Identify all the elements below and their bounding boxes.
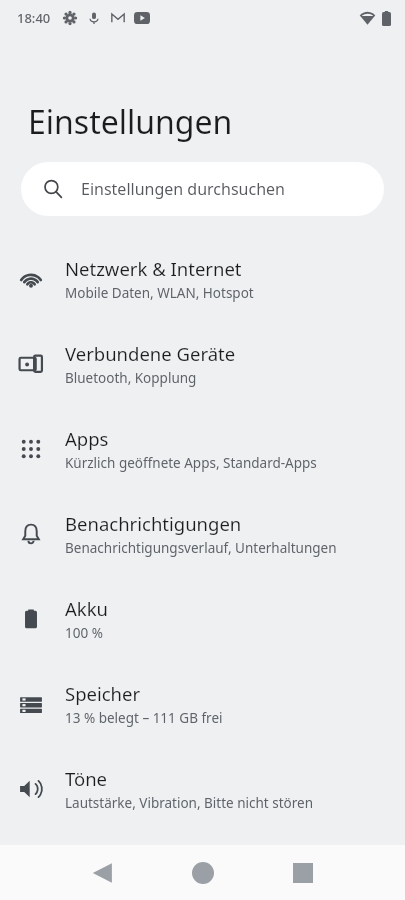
staticText: Benachrichtigungen xyxy=(65,511,242,536)
button[interactable]: Einstellungen durchsuchen xyxy=(21,162,384,216)
button[interactable]: Akku xyxy=(0,576,405,661)
staticText: Akku xyxy=(65,596,109,621)
button[interactable]: Home xyxy=(179,849,227,897)
staticText: Einstellungen durchsuchen xyxy=(81,178,285,200)
staticText: Einstellungen xyxy=(28,100,233,144)
staticText: Bluetooth, Kopplung xyxy=(65,369,197,387)
button[interactable]: Netzwerk & Internet xyxy=(0,236,405,321)
staticText: Benachrichtigungsverlauf, Unterhaltungen xyxy=(65,539,337,557)
staticText: Töne xyxy=(65,766,108,791)
staticText: Speicher xyxy=(65,681,141,706)
staticText: Verbundene Geräte xyxy=(65,341,236,366)
staticText: Netzwerk & Internet xyxy=(65,256,242,281)
staticText: Apps xyxy=(65,426,109,451)
staticText: 13 % belegt – 111 GB frei xyxy=(65,709,223,727)
button[interactable]: Back xyxy=(78,849,126,897)
staticText: Kürzlich geöffnete Apps, Standard-Apps xyxy=(65,454,317,472)
button[interactable]: Verbundene Geräte xyxy=(0,321,405,406)
button[interactable]: Recent apps xyxy=(279,849,327,897)
staticText: 100 % xyxy=(65,624,103,642)
button[interactable]: Töne xyxy=(0,746,405,831)
button[interactable]: Speicher xyxy=(0,661,405,746)
button[interactable]: Benachrichtigungen xyxy=(0,491,405,576)
staticText: Lautstärke, Vibration, Bitte nicht störe… xyxy=(65,794,313,812)
staticText: 18:40 xyxy=(17,9,51,27)
button[interactable]: Apps xyxy=(0,406,405,491)
staticText: Mobile Daten, WLAN, Hotspot xyxy=(65,284,254,302)
